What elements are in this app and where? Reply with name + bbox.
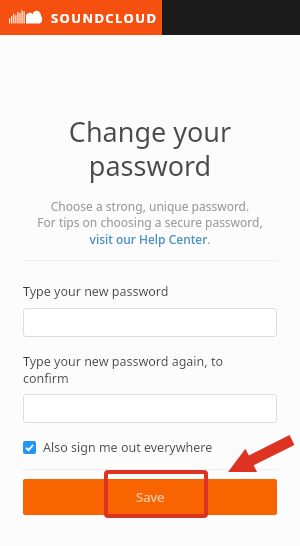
staticText: Choose a strong, unique password. For ti… (12, 198, 288, 248)
staticText: Type your new password again, to confirm (23, 353, 223, 386)
button[interactable]: Also sign me out everywhere (23, 437, 213, 458)
button[interactable]: Save (23, 479, 277, 515)
button[interactable]: Password entry field (23, 394, 277, 423)
button[interactable]: SoundCloud home (0, 0, 162, 35)
staticText: SOUNDCLOUD (51, 9, 158, 27)
staticText: Also sign me out everywhere (43, 439, 213, 456)
staticText: Change your password (18, 113, 282, 184)
button[interactable]: Password entry field (23, 308, 277, 337)
staticText: Type your new password (23, 283, 169, 300)
staticText: Save (136, 488, 165, 506)
